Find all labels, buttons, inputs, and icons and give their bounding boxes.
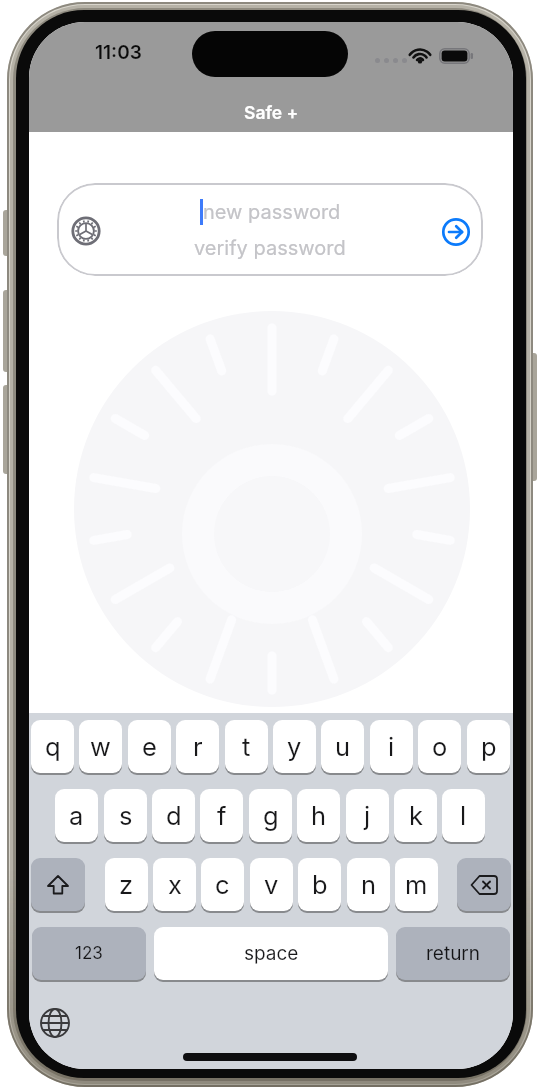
staticText: o [432,731,448,762]
staticText: v [264,869,279,900]
staticText: Safe + [244,102,299,123]
button[interactable]: x [153,858,196,911]
staticText: s [119,800,133,831]
staticText: u [335,731,351,762]
button[interactable] [457,858,511,911]
button[interactable]: c [201,858,244,911]
staticText: y [287,731,302,762]
staticText: g [263,800,279,831]
button[interactable]: return [396,927,510,980]
button[interactable]: o [418,720,461,773]
button[interactable]: g [249,789,292,842]
button[interactable]: f [200,789,243,842]
staticText: 11:03 [95,41,142,64]
button[interactable]: b [298,858,341,911]
button[interactable] [441,217,471,247]
staticText: b [312,869,328,900]
staticText: h [311,800,327,831]
staticText: z [119,869,134,900]
staticText: x [168,869,182,900]
button[interactable]: w [79,720,122,773]
staticText: 123 [75,943,103,964]
staticText: l [460,800,467,831]
staticText: f [217,800,227,831]
button[interactable]: k [394,789,437,842]
staticText: r [193,731,203,762]
button[interactable]: y [273,720,316,773]
staticText: d [166,800,182,831]
button[interactable] [37,1005,73,1041]
button[interactable]: r [176,720,219,773]
button[interactable] [31,858,85,911]
staticText: p [481,731,497,762]
button[interactable]: a [55,789,98,842]
button[interactable]: s [104,789,147,842]
button[interactable]: space [154,927,388,980]
staticText: return [426,942,481,965]
button[interactable]: v [250,858,293,911]
staticText: j [364,800,371,831]
staticText: e [142,731,157,762]
button[interactable]: u [321,720,364,773]
button[interactable]: e [128,720,171,773]
button[interactable]: d [152,789,195,842]
button[interactable]: m [395,858,438,911]
staticText: i [388,731,395,762]
button[interactable]: new password [57,183,483,276]
staticText: t [242,731,251,762]
button[interactable]: p [467,720,510,773]
staticText: m [405,869,428,900]
button[interactable]: q [31,720,74,773]
staticText: n [361,869,377,900]
button[interactable]: 123 [32,927,146,980]
staticText: space [244,942,299,965]
staticText: a [69,800,84,831]
staticText: k [409,800,423,831]
button[interactable]: z [105,858,148,911]
button[interactable]: n [347,858,390,911]
staticText: w [90,731,111,762]
button[interactable]: j [346,789,389,842]
staticText: new password [203,200,341,224]
button[interactable]: h [297,789,340,842]
staticText: verify password [194,236,346,260]
button[interactable]: i [370,720,413,773]
staticText: c [215,869,230,900]
staticText: q [45,731,61,762]
button[interactable]: l [442,789,485,842]
button[interactable]: t [225,720,268,773]
